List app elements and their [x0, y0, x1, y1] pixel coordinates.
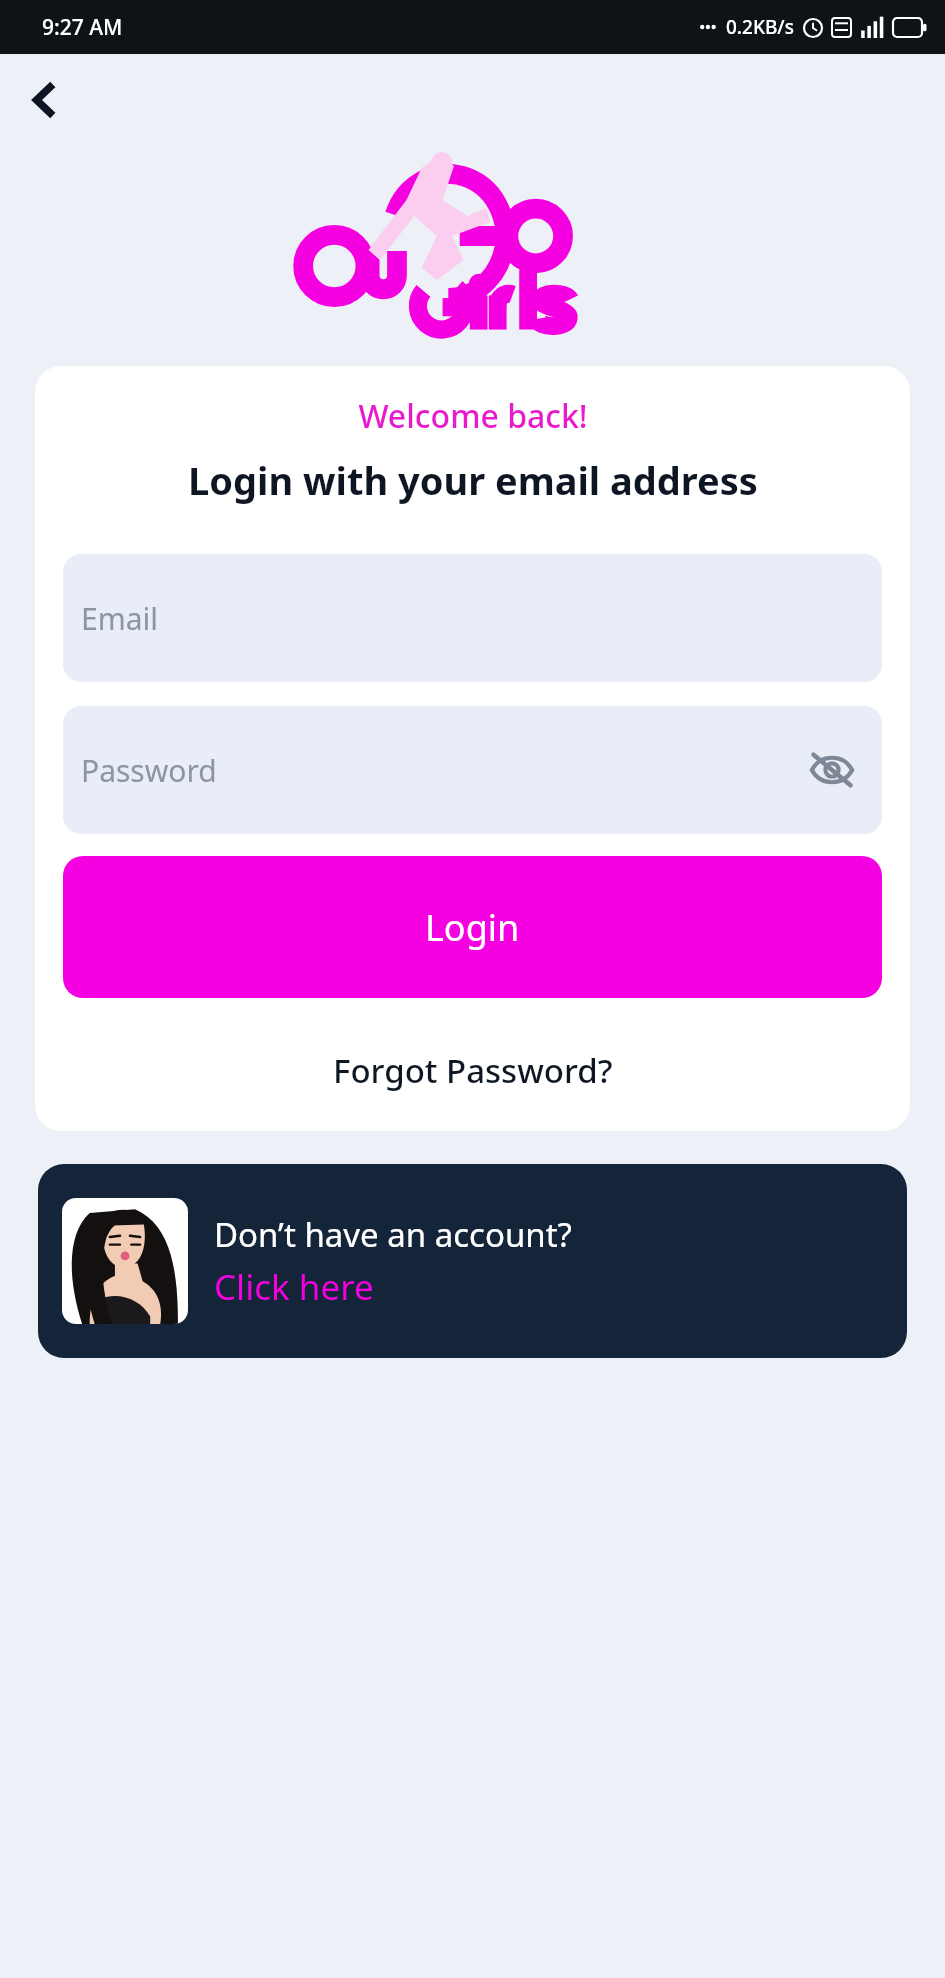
staticText: Forgot Password?: [333, 1048, 613, 1093]
staticText: Don’t have an account?: [214, 1212, 572, 1257]
staticText: 9:27 AM: [42, 13, 123, 42]
staticText: Login: [425, 903, 520, 952]
button[interactable]: Login: [63, 856, 882, 998]
button[interactable]: Back: [16, 72, 72, 128]
button[interactable]: Don’t have an account?: [38, 1164, 907, 1358]
button[interactable]: Click here: [214, 1263, 374, 1311]
button[interactable]: Email: [63, 554, 882, 682]
button[interactable]: Forgot Password?: [327, 1042, 619, 1099]
staticText: Email: [81, 598, 159, 639]
button[interactable]: Password: [63, 706, 882, 834]
staticText: 0.2KB/s: [726, 14, 794, 40]
staticText: Login with your email address: [188, 454, 758, 506]
button[interactable]: Show password: [800, 738, 864, 802]
staticText: Welcome back!: [358, 394, 588, 438]
staticText: Password: [81, 750, 217, 791]
